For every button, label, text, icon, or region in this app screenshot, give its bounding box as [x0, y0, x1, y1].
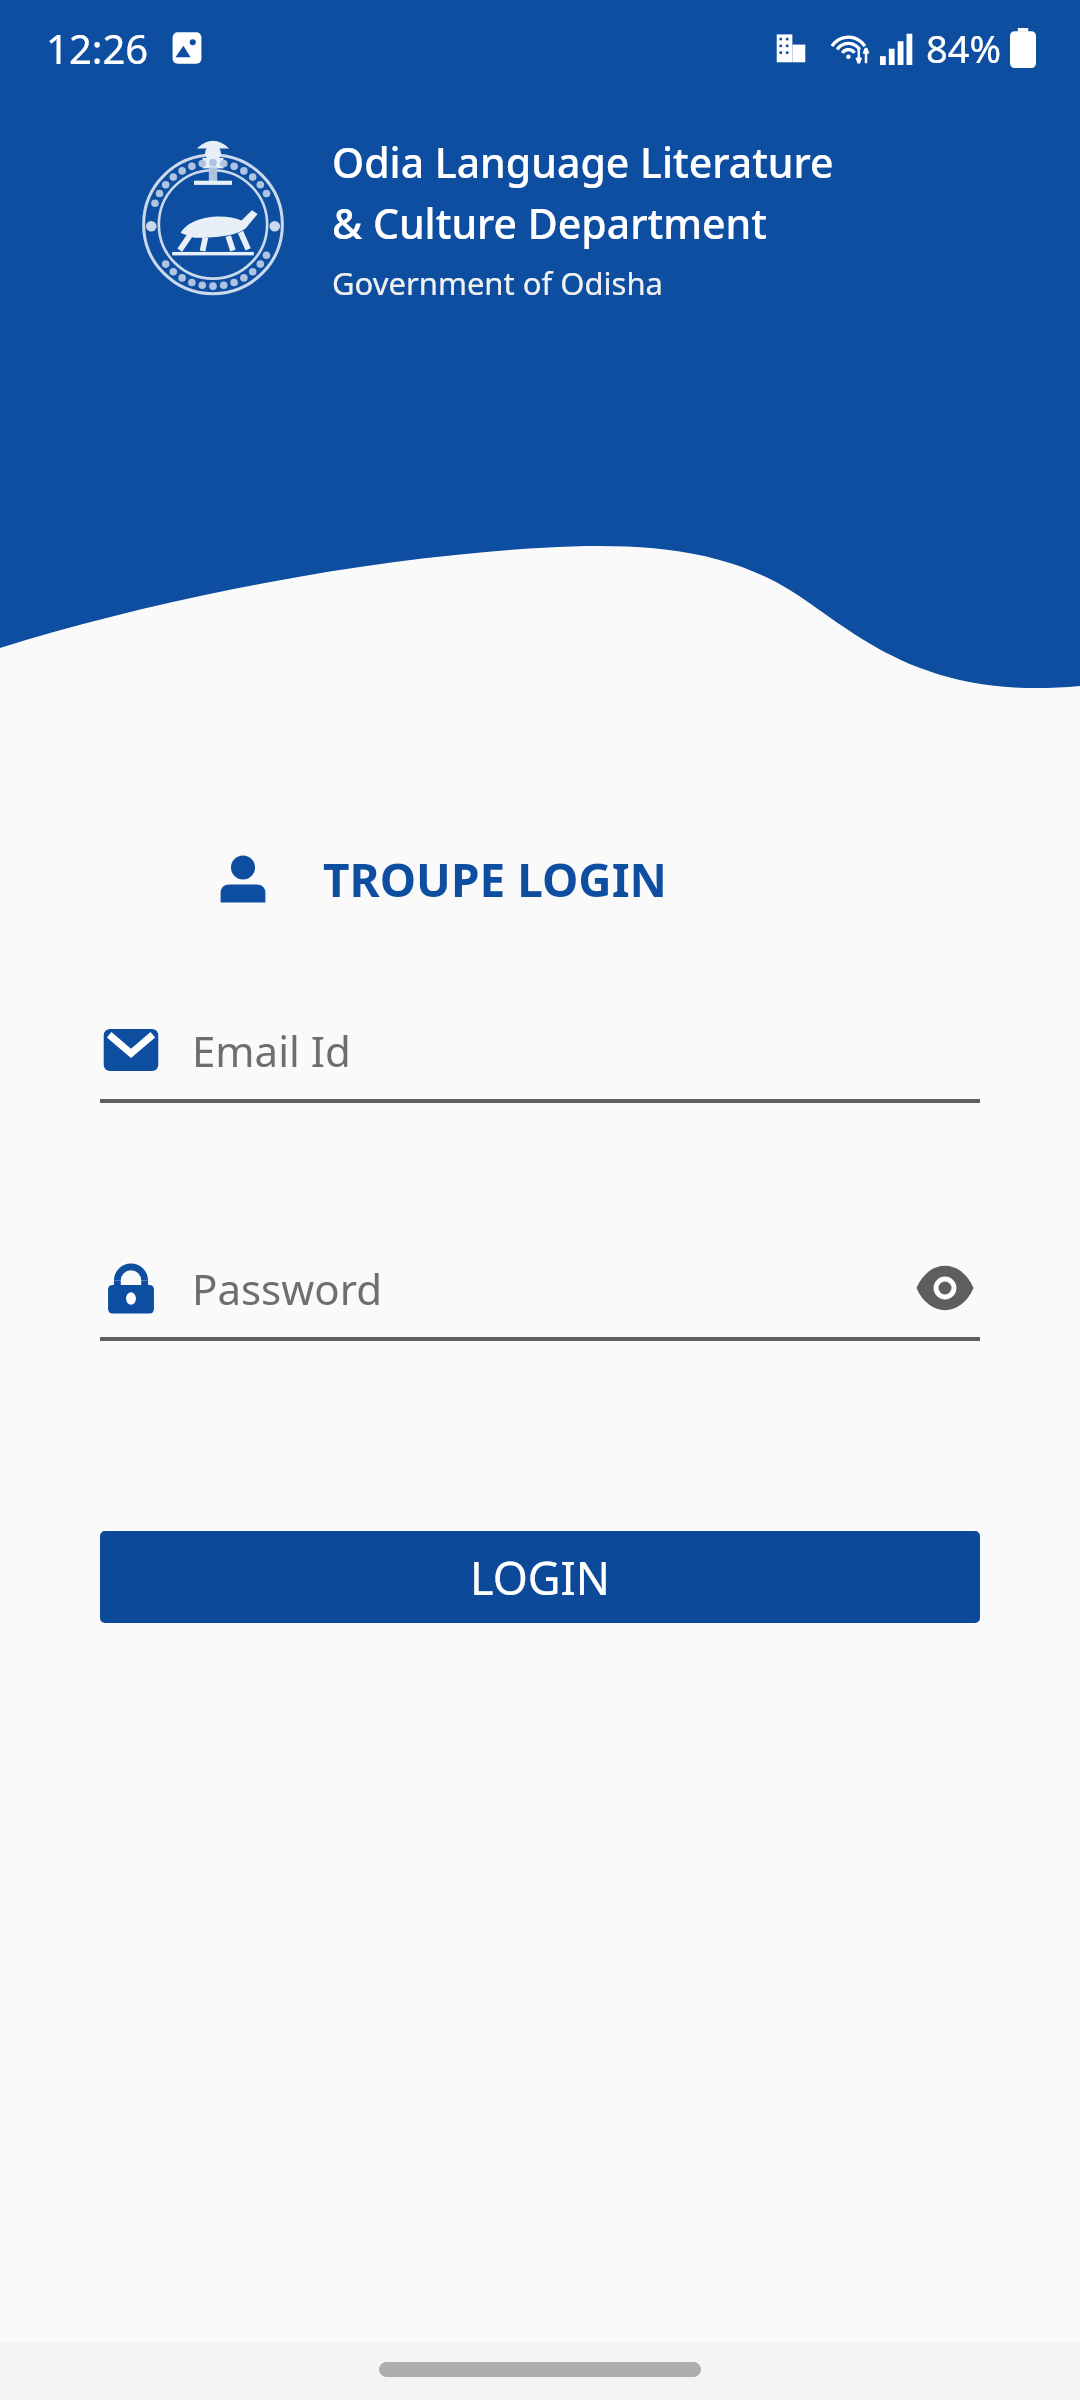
button[interactable]: Email Id [100, 1011, 980, 1103]
staticText: Email Id [192, 1022, 351, 1079]
staticText: & Culture Department [332, 195, 768, 251]
staticText: Odia Language Literature [332, 134, 834, 190]
staticText: Government of Odisha [332, 262, 663, 304]
staticText: Password [192, 1260, 382, 1317]
button[interactable]: LOGIN [100, 1531, 980, 1623]
staticText: LOGIN [470, 1547, 611, 1608]
staticText: 12:26 [46, 21, 149, 75]
button[interactable]: Password [100, 1249, 980, 1341]
staticText: TROUPE LOGIN [323, 848, 667, 911]
staticText: 84% [926, 22, 1002, 74]
button[interactable]: Show password [910, 1253, 980, 1323]
